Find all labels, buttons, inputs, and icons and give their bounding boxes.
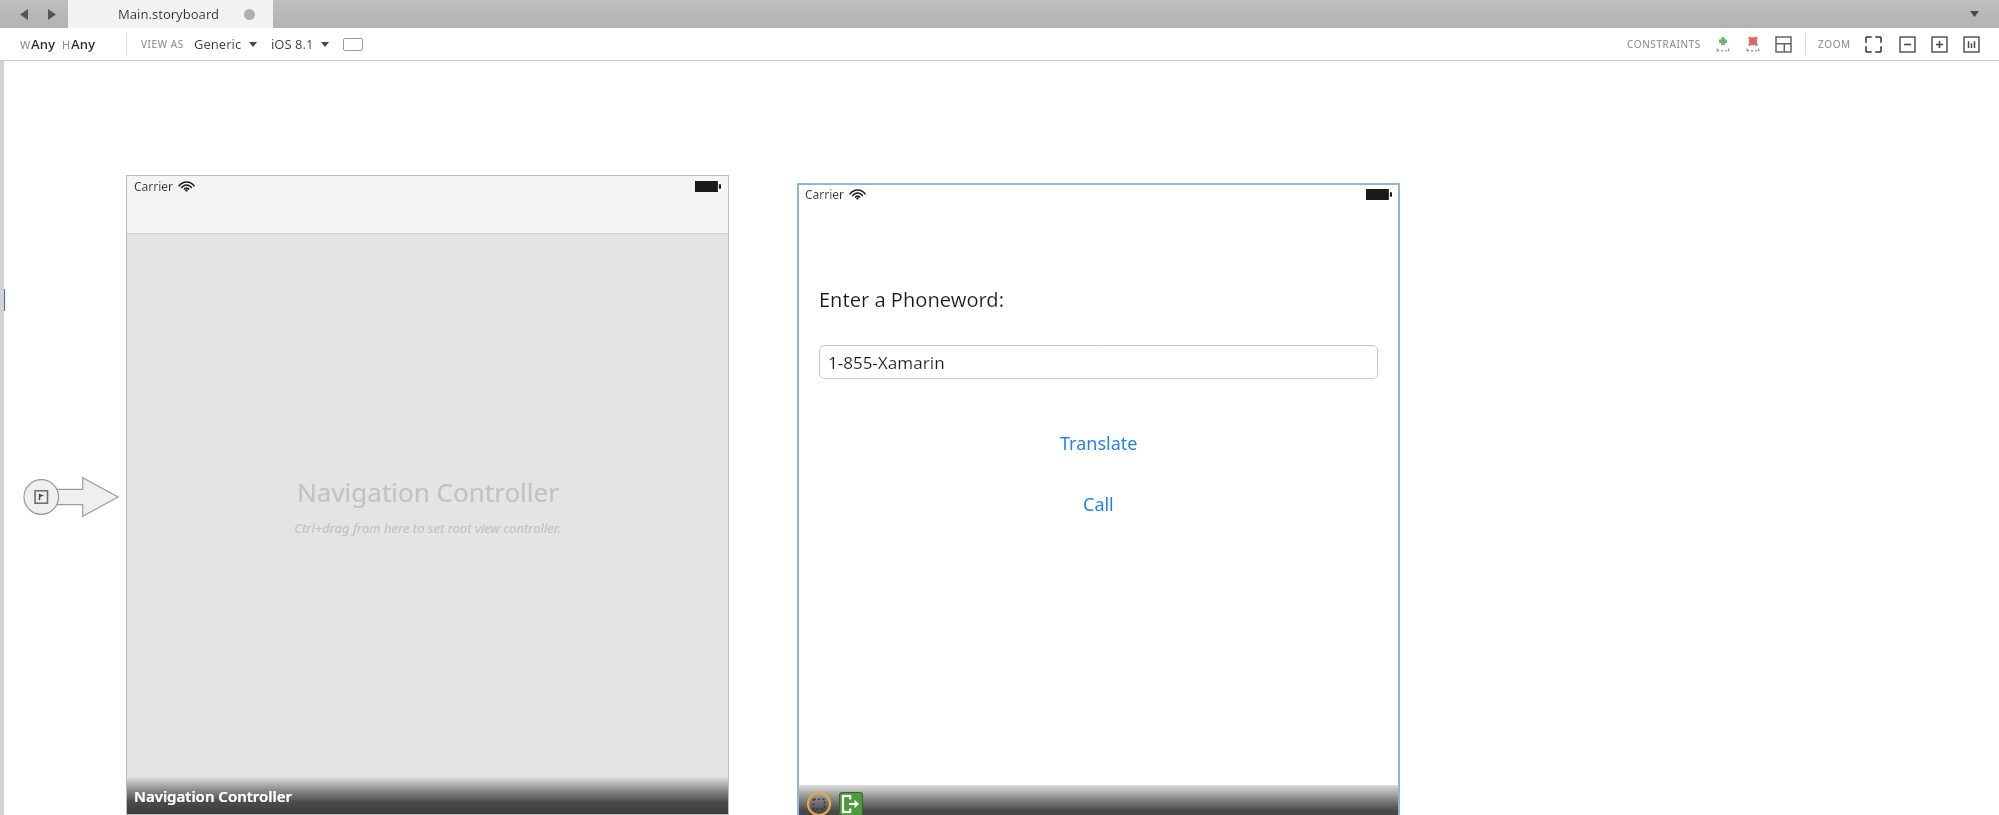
button[interactable]: Forward [38, 1, 66, 27]
button[interactable]: Back [10, 1, 38, 27]
button[interactable]: iOS 8.1 [271, 35, 329, 53]
button[interactable]: Main.storyboard [68, 0, 273, 28]
button[interactable]: Exit [839, 792, 863, 815]
button[interactable]: Translate [1052, 427, 1146, 460]
staticText: iOS 8.1 [271, 35, 314, 53]
staticText: 1-855-Xamarin [828, 351, 945, 374]
staticText: H [62, 37, 71, 52]
staticText: Ctrl+drag from here to set root view con… [294, 519, 561, 537]
button[interactable]: Zoom to fit [1863, 34, 1883, 54]
staticText: W [20, 37, 31, 52]
staticText: ZOOM [1818, 37, 1851, 51]
button[interactable]: Resolve layout [1773, 34, 1793, 54]
button[interactable]: 1-855-Xamarin [828, 345, 1369, 379]
staticText: Navigation Controller [297, 474, 559, 509]
staticText: Navigation Controller [134, 786, 293, 806]
button[interactable]: Device preview [343, 38, 363, 51]
button[interactable]: Zoom out [1897, 34, 1917, 54]
button[interactable]: W [20, 35, 96, 53]
staticText: Any [31, 35, 56, 53]
staticText: Main.storyboard [118, 5, 219, 23]
button[interactable]: Actual size [1961, 34, 1981, 54]
button[interactable]: Call [1075, 488, 1122, 521]
staticText: Carrier [805, 186, 845, 202]
button[interactable]: View controller [797, 785, 1400, 815]
button[interactable]: Add constraint [1713, 34, 1733, 54]
staticText: Generic [194, 35, 242, 53]
button[interactable]: Clear constraints [1743, 34, 1763, 54]
staticText: VIEW AS [141, 37, 184, 51]
button[interactable]: Tab list [1963, 3, 1985, 25]
staticText: Any [71, 35, 96, 53]
staticText: Translate [1060, 431, 1138, 456]
button[interactable]: Navigation Controller [126, 777, 729, 815]
staticText: CONSTRAINTS [1627, 37, 1701, 51]
button[interactable]: Generic [194, 35, 257, 53]
button[interactable]: Close tab [244, 9, 255, 20]
staticText: Carrier [134, 178, 174, 194]
button[interactable]: Enter a Phoneword: [819, 286, 1004, 313]
button[interactable]: Zoom in [1929, 34, 1949, 54]
button[interactable]: View controller [807, 792, 831, 815]
staticText: Call [1083, 492, 1114, 517]
